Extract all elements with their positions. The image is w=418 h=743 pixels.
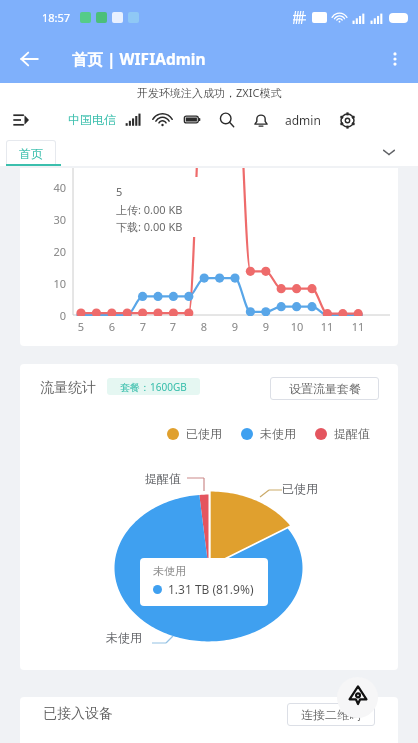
staticText: 11 — [317, 319, 337, 334]
staticText: 20 — [20, 244, 66, 259]
button[interactable]: Expand — [377, 140, 401, 164]
staticText: 已接入设备 — [43, 705, 113, 723]
staticText: 0 — [20, 308, 66, 323]
staticText: 已使用 — [282, 481, 318, 496]
staticText: 7 — [163, 319, 183, 334]
staticText: 11 — [348, 319, 368, 334]
staticText: 下载: 0.00 KB — [116, 219, 183, 234]
staticText: 5 — [116, 184, 123, 199]
staticText: 8 — [194, 319, 214, 334]
staticText: 10 — [287, 319, 307, 334]
staticText: 中国电信 — [68, 112, 116, 127]
button[interactable]: Search — [215, 108, 239, 132]
staticText: 首页 — [19, 146, 43, 161]
button[interactable]: Settings — [335, 108, 359, 132]
button[interactable]: admin — [285, 112, 321, 128]
staticText: 未使用 — [153, 564, 186, 578]
button[interactable]: 设置流量套餐 — [270, 377, 379, 400]
staticText: 已使用 — [186, 426, 222, 441]
staticText: 18:57 — [42, 10, 71, 25]
button[interactable]: 连接二维码 — [287, 703, 375, 726]
staticText: 1.31 TB (81.9%) — [168, 581, 254, 597]
staticText: 开发环境注入成功，ZXIC模式 — [137, 85, 282, 100]
staticText: 上传: 0.00 KB — [116, 202, 183, 217]
staticText: 9 — [256, 319, 276, 334]
staticText: 提醒值 — [145, 471, 181, 486]
staticText: 提醒值 — [334, 426, 370, 441]
button[interactable]: Menu — [8, 107, 34, 133]
button[interactable]: Back to top — [337, 677, 378, 718]
staticText: 设置流量套餐 — [289, 381, 361, 396]
staticText: 5 — [71, 319, 91, 334]
staticText: 流量统计 — [40, 379, 96, 397]
staticText: 未使用 — [106, 630, 142, 645]
staticText: 连接二维码 — [301, 707, 361, 722]
staticText: 9 — [225, 319, 245, 334]
staticText: 6 — [102, 319, 122, 334]
staticText: 7 — [133, 319, 153, 334]
staticText: 40 — [20, 180, 66, 195]
button[interactable]: Back — [14, 44, 44, 74]
button[interactable]: More options — [380, 44, 410, 74]
button[interactable]: Notifications — [249, 108, 273, 132]
button[interactable]: 首页 — [6, 140, 56, 166]
staticText: 首页 | WIFIAdmin — [72, 48, 206, 69]
staticText: 10 — [20, 276, 66, 291]
staticText: 套餐：1600GB — [120, 380, 187, 394]
staticText: 30 — [20, 212, 66, 227]
staticText: 未使用 — [260, 426, 296, 441]
